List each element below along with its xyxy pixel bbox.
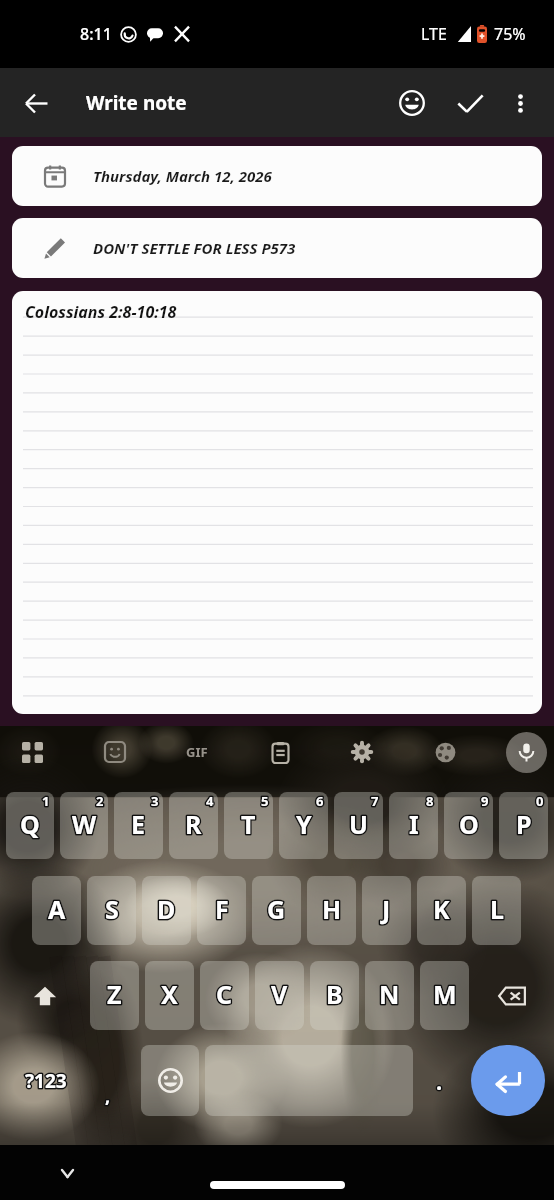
button[interactable]: H: [307, 876, 356, 945]
button[interactable]: N: [365, 961, 414, 1030]
button[interactable]: Emoji: [141, 1045, 199, 1116]
staticText: U: [349, 807, 368, 841]
staticText: L: [490, 892, 504, 926]
staticText: Colossians 2:8-10:18: [25, 301, 177, 323]
staticText: 7: [371, 792, 379, 810]
staticText: 5: [261, 792, 269, 810]
staticText: G: [267, 892, 286, 926]
staticText: R: [185, 807, 202, 841]
button[interactable]: 9: [444, 792, 493, 859]
staticText: 7: [371, 792, 379, 810]
staticText: T: [241, 807, 256, 841]
button[interactable]: Enter: [471, 1045, 545, 1116]
button[interactable]: A: [32, 876, 81, 945]
button[interactable]: B: [310, 961, 359, 1030]
button[interactable]: 1: [6, 792, 54, 859]
staticText: C: [216, 977, 233, 1011]
staticText: P: [516, 807, 532, 841]
staticText: 5: [261, 792, 269, 810]
button[interactable]: 5: [224, 792, 273, 859]
staticText: P: [516, 807, 532, 841]
button[interactable]: More options: [499, 82, 541, 124]
staticText: V: [271, 977, 288, 1011]
button[interactable]: J: [362, 876, 411, 945]
staticText: 9: [481, 792, 489, 810]
button[interactable]: Settings: [341, 731, 383, 773]
staticText: DON'T SETTLE FOR LESS P573: [93, 238, 296, 258]
staticText: V: [271, 977, 288, 1011]
staticText: N: [379, 977, 400, 1011]
button[interactable]: 4: [169, 792, 218, 859]
staticText: 4: [206, 792, 214, 810]
button[interactable]: Hide keyboard: [49, 1155, 85, 1191]
staticText: J: [382, 892, 391, 926]
staticText: Y: [296, 807, 312, 841]
button[interactable]: 6: [279, 792, 328, 859]
staticText: ?123: [25, 1068, 67, 1094]
staticText: I: [409, 807, 419, 841]
button[interactable]: Space: [205, 1045, 413, 1116]
button[interactable]: L: [472, 876, 521, 945]
button[interactable]: Clipboard: [259, 731, 301, 773]
button[interactable]: Back: [13, 80, 59, 126]
staticText: 9: [481, 792, 489, 810]
staticText: R: [185, 807, 202, 841]
button[interactable]: GIF: [176, 731, 218, 773]
staticText: A: [48, 892, 66, 926]
staticText: X: [161, 977, 178, 1011]
button[interactable]: Voice input: [506, 732, 547, 773]
button[interactable]: .: [413, 1045, 466, 1116]
button[interactable]: M: [420, 961, 469, 1030]
button[interactable]: 0: [499, 792, 548, 859]
staticText: 4: [206, 792, 214, 810]
button[interactable]: V: [255, 961, 304, 1030]
button[interactable]: D: [142, 876, 191, 945]
staticText: ,: [105, 1084, 111, 1109]
button[interactable]: Emoji: [389, 80, 435, 126]
staticText: Z: [107, 977, 122, 1011]
staticText: GIF: [186, 743, 208, 761]
staticText: C: [216, 977, 233, 1011]
staticText: F: [215, 892, 229, 926]
button[interactable]: 8: [389, 792, 438, 859]
staticText: 2: [96, 792, 104, 810]
button[interactable]: C: [200, 961, 249, 1030]
staticText: LTE: [421, 23, 447, 45]
staticText: .: [436, 1066, 443, 1096]
button[interactable]: Stickers: [94, 731, 136, 773]
staticText: 0: [536, 792, 544, 810]
staticText: N: [379, 977, 400, 1011]
button[interactable]: Z: [90, 961, 139, 1030]
button[interactable]: G: [252, 876, 301, 945]
staticText: 2: [96, 792, 104, 810]
button[interactable]: F: [197, 876, 246, 945]
button[interactable]: Keyboard layouts: [11, 731, 53, 773]
staticText: S: [105, 892, 119, 926]
button[interactable]: K: [417, 876, 466, 945]
button[interactable]: Colossians 2:8-10:18: [12, 291, 542, 714]
staticText: Q: [20, 807, 40, 841]
staticText: M: [433, 977, 457, 1011]
staticText: B: [326, 977, 343, 1011]
staticText: Write note: [86, 90, 187, 116]
staticText: L: [490, 892, 504, 926]
button[interactable]: Themes: [424, 731, 466, 773]
button[interactable]: 7: [334, 792, 383, 859]
button[interactable]: 2: [60, 792, 108, 859]
button[interactable]: S: [87, 876, 136, 945]
staticText: K: [433, 892, 450, 926]
button[interactable]: Shift: [3, 961, 87, 1030]
staticText: O: [459, 807, 479, 841]
button[interactable]: X: [145, 961, 194, 1030]
button[interactable]: ?123: [0, 1045, 141, 1116]
staticText: F: [215, 892, 229, 926]
button[interactable]: 3: [114, 792, 163, 859]
staticText: M: [433, 977, 457, 1011]
staticText: O: [459, 807, 479, 841]
button[interactable]: DON'T SETTLE FOR LESS P573: [12, 218, 542, 278]
button[interactable]: Save note: [447, 80, 493, 126]
button[interactable]: Backspace: [472, 961, 551, 1030]
button[interactable]: Thursday, March 12, 2026: [12, 146, 542, 206]
staticText: ,: [105, 1084, 111, 1109]
staticText: T: [241, 807, 256, 841]
